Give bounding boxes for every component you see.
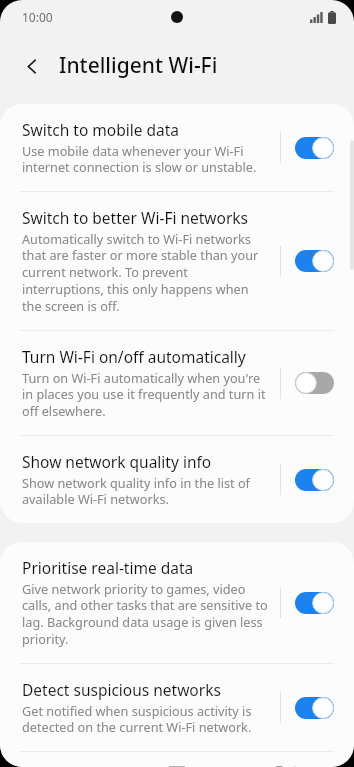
staticText: Show network quality info [22,451,212,472]
staticText: Give network priority to games, video ca… [22,580,270,648]
button[interactable]: Back [11,45,53,87]
button[interactable]: Switch to better Wi-Fi networks [0,192,354,330]
button[interactable]: Turn Wi-Fi on/off automatically [0,331,354,435]
staticText: Turn Wi-Fi on/off automatically [22,346,246,367]
staticText: Automatically switch to Wi-Fi networks t… [22,230,270,315]
staticText: Get notified when suspicious activity is… [22,702,270,736]
button[interactable]: Show network quality info toggle [295,469,334,491]
staticText: Detect suspicious networks [22,679,221,700]
staticText: Intelligent Wi-Fi [59,51,218,80]
staticText: Turn on Wi-Fi automatically when you're … [22,369,270,420]
button[interactable]: Prioritise real-time data [0,542,354,663]
button[interactable]: Switch to better Wi-Fi networks toggle [295,250,334,272]
staticText: Switch to better Wi-Fi networks [22,207,249,228]
staticText: Switch to mobile data [22,119,180,140]
button[interactable]: Detect suspicious networks toggle [295,697,334,719]
staticText: Use mobile data whenever your Wi-Fi inte… [22,142,270,176]
button[interactable]: Detect suspicious networks [0,664,354,751]
staticText: Show network quality info in the list of… [22,474,270,508]
staticText: 10:00 [22,9,53,25]
staticText: Prioritise real-time data [22,557,194,578]
button[interactable]: Switch to mobile data [0,104,354,191]
button[interactable]: Switch to mobile data toggle [295,137,334,159]
button[interactable]: Show network quality info [0,436,354,523]
button[interactable]: Wi-Fi power saving mode [0,752,354,767]
button[interactable]: Prioritise real-time data toggle [295,592,334,614]
button[interactable]: Turn Wi-Fi on/off automatically toggle [295,372,334,394]
